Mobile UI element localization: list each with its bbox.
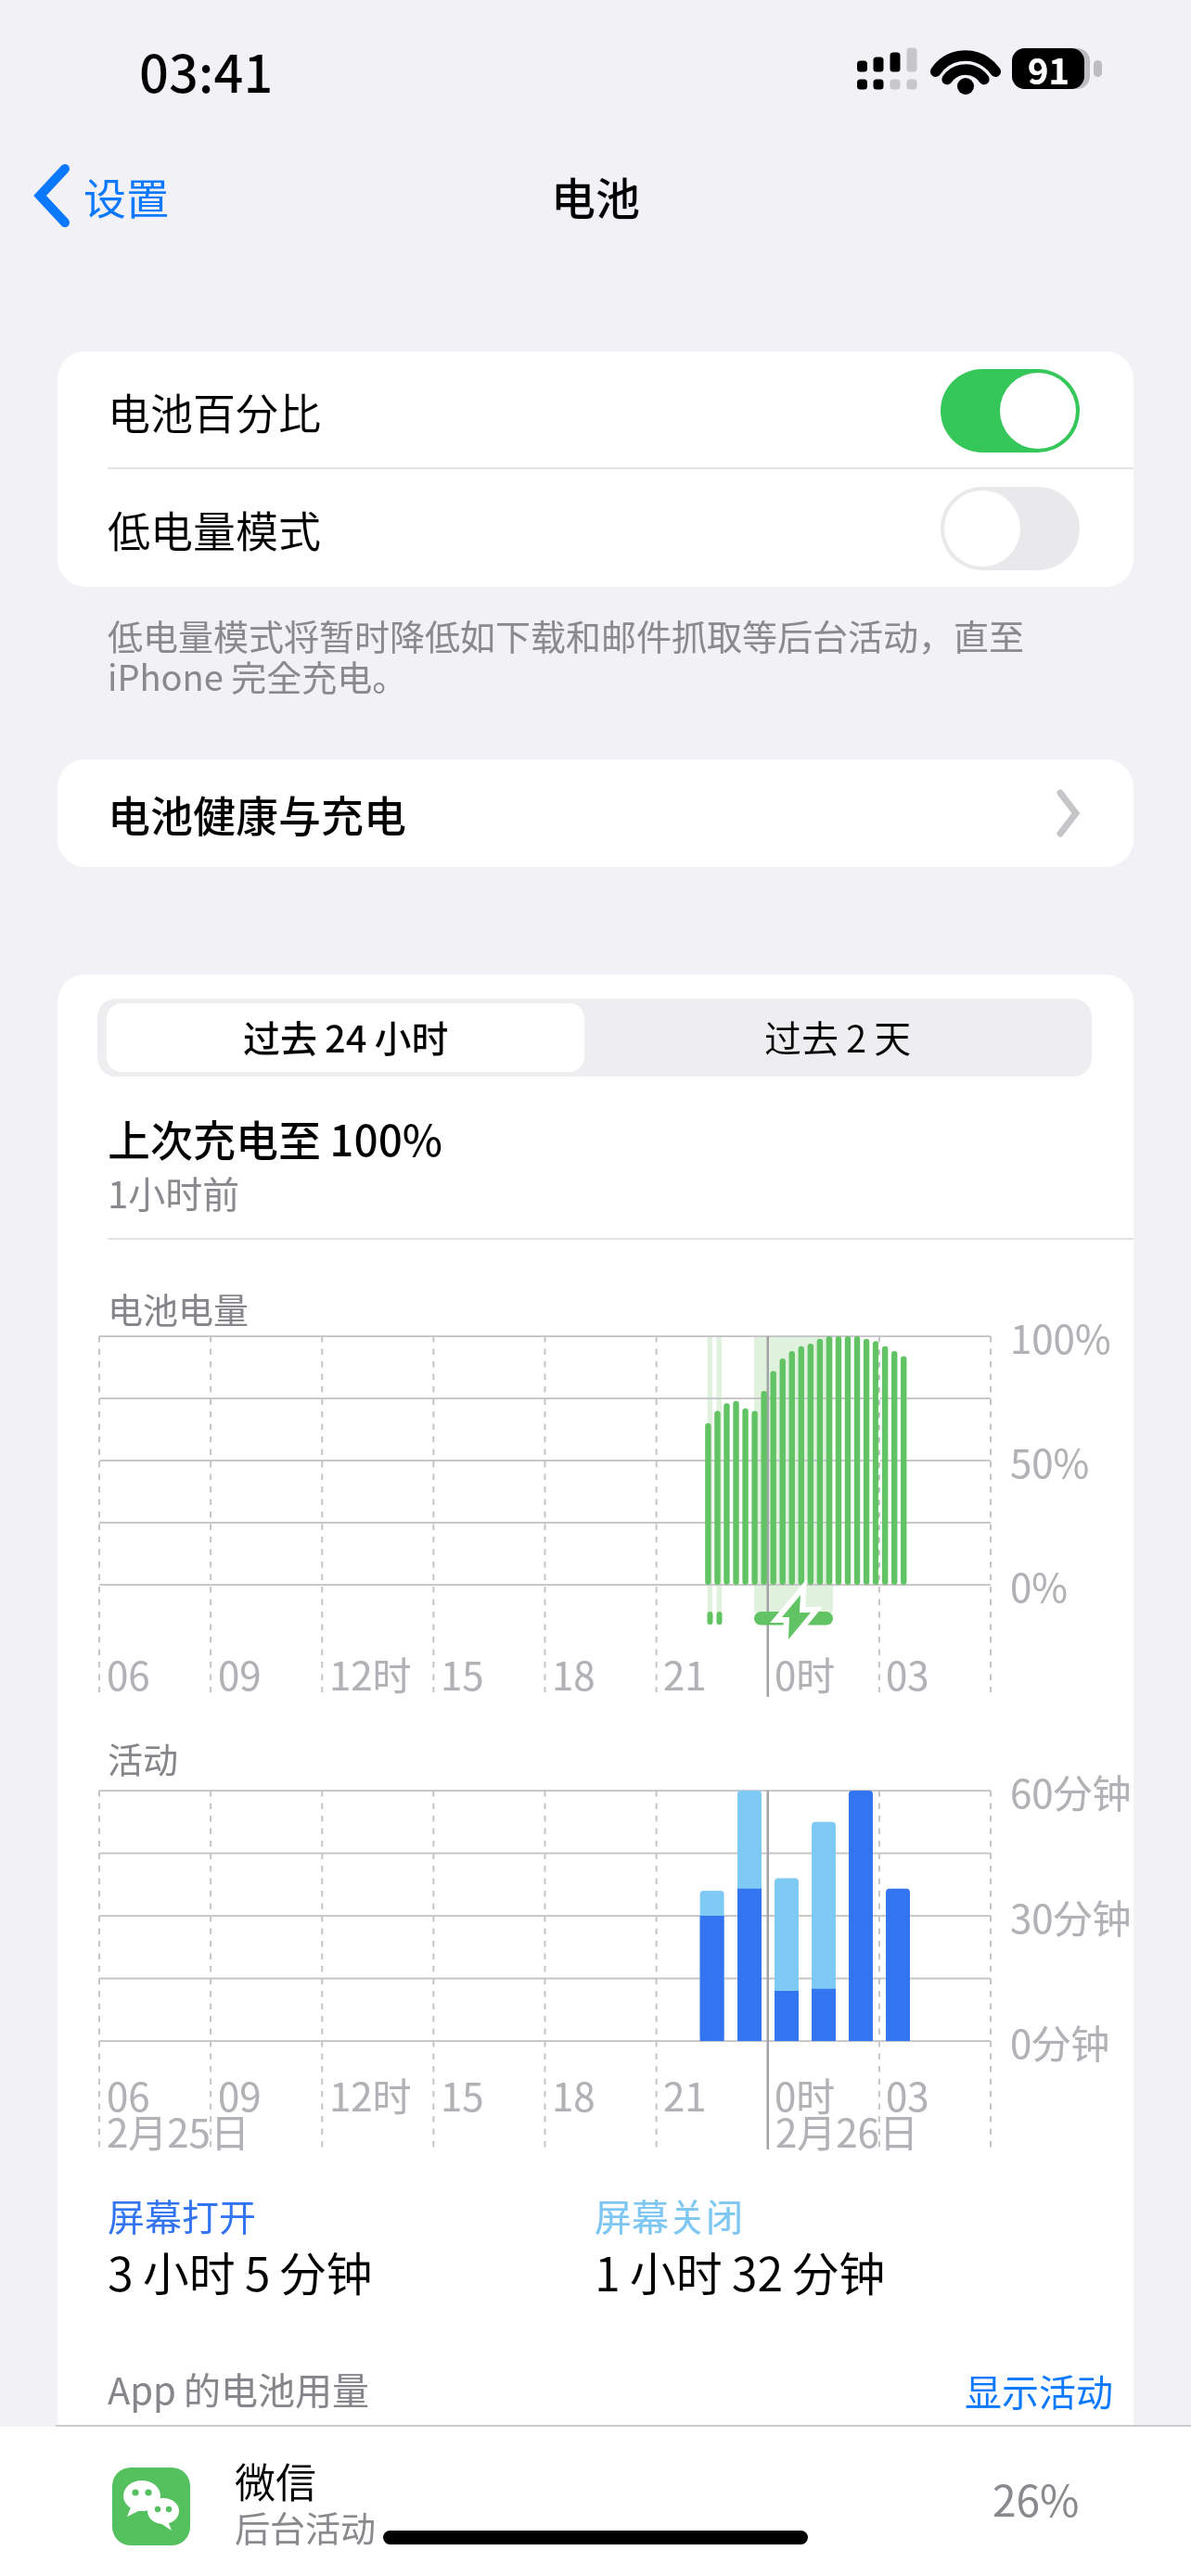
staticText: 12时: [329, 2066, 412, 2123]
staticText: App 的电池用量: [108, 2362, 369, 2416]
staticText: 0时: [775, 1645, 836, 1702]
staticText: 21: [663, 2066, 707, 2123]
staticText: 15: [441, 1645, 484, 1702]
staticText: 21: [663, 1645, 707, 1702]
staticText: 06: [107, 2066, 150, 2123]
staticText: 09: [218, 2066, 262, 2123]
button[interactable]: 显示活动: [928, 2355, 1113, 2426]
staticText: 0时: [775, 2066, 836, 2123]
staticText: 低电量模式将暂时降低如下载和邮件抓取等后台活动，直至: [108, 609, 1025, 660]
staticText: 屏幕关闭: [595, 2188, 743, 2242]
staticText: 电池健康与充电: [108, 783, 406, 845]
staticText: 屏幕打开: [108, 2188, 256, 2242]
staticText: 03: [886, 1645, 929, 1702]
staticText: 0分钟: [1010, 2013, 1110, 2070]
staticText: 低电量模式: [108, 498, 321, 560]
button[interactable]: [584, 1003, 1085, 1072]
staticText: 显示活动: [965, 2364, 1113, 2417]
staticText: iPhone 完全充电。: [108, 650, 408, 701]
staticText: 18: [552, 1645, 595, 1702]
staticText: 0%: [1010, 1557, 1068, 1613]
staticText: 活动: [108, 1732, 179, 1783]
staticText: 03:41: [139, 32, 274, 108]
staticText: 60分钟: [1010, 1763, 1132, 1819]
staticText: 电池: [551, 163, 641, 228]
staticText: 2月26日: [775, 2102, 918, 2159]
button[interactable]: [0, 2429, 1191, 2576]
staticText: 微信: [235, 2451, 316, 2510]
staticText: 30分钟: [1010, 1888, 1132, 1945]
staticText: 上次充电至 100%: [108, 1107, 443, 1169]
button[interactable]: [58, 469, 1133, 587]
staticText: 09: [218, 1645, 262, 1702]
staticText: 15: [441, 2066, 484, 2123]
staticText: 18: [552, 2066, 595, 2123]
staticText: 1小时前: [108, 1166, 240, 1219]
staticText: 后台活动: [235, 2501, 377, 2552]
staticText: 1 小时 32 分钟: [595, 2238, 886, 2304]
button[interactable]: [941, 487, 1080, 570]
staticText: 12时: [329, 1645, 412, 1702]
staticText: 06: [107, 1645, 150, 1702]
staticText: 设置: [83, 165, 169, 227]
staticText: 03: [886, 2066, 929, 2123]
staticText: 3 小时 5 分钟: [108, 2238, 373, 2304]
staticText: 过去 2 天: [764, 1010, 912, 1064]
button[interactable]: [941, 369, 1080, 453]
button[interactable]: [58, 759, 1133, 867]
staticText: 91: [1028, 44, 1069, 95]
button[interactable]: [28, 158, 213, 232]
staticText: 100%: [1010, 1308, 1111, 1365]
staticText: 26%: [992, 2468, 1080, 2530]
button[interactable]: [58, 351, 1133, 468]
staticText: 2月25日: [107, 2102, 250, 2159]
staticText: 50%: [1010, 1433, 1090, 1489]
button[interactable]: [107, 1003, 584, 1072]
staticText: 电池百分比: [108, 380, 321, 442]
staticText: 电池电量: [108, 1282, 250, 1333]
staticText: 过去 24 小时: [243, 1010, 449, 1064]
